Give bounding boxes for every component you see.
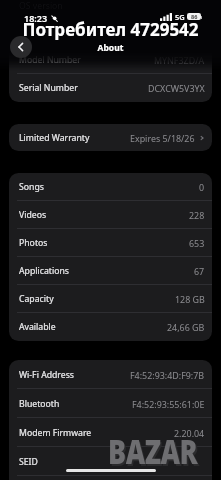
staticText: 2.20.04 bbox=[174, 427, 205, 439]
staticText: 128 GB bbox=[175, 293, 205, 305]
staticText: F4:52:93:4D:F9:7B bbox=[130, 369, 205, 381]
staticText: 18:23 bbox=[24, 12, 48, 24]
staticText: Videos bbox=[19, 209, 47, 221]
staticText: DCXCW5V3YX bbox=[148, 82, 205, 94]
staticText: 0 bbox=[199, 181, 205, 193]
button[interactable]: Model Number bbox=[9, 46, 212, 74]
staticText: Bluetooth bbox=[19, 398, 60, 410]
staticText: 24,66 GB bbox=[167, 321, 205, 333]
staticText: Photos bbox=[19, 237, 48, 249]
button[interactable]: Limited Warranty bbox=[9, 124, 212, 151]
button[interactable]: Capacity bbox=[9, 285, 212, 313]
button[interactable]: Wi-Fi Address bbox=[9, 360, 212, 389]
button[interactable]: Available bbox=[9, 313, 212, 341]
staticText: MYNF3ZD/A bbox=[154, 54, 205, 66]
staticText: Songs bbox=[19, 181, 44, 193]
staticText: 5G bbox=[175, 12, 185, 22]
button[interactable]: Back bbox=[10, 36, 32, 58]
staticText: Modem Firmware bbox=[19, 427, 92, 439]
staticText: Потребител 4729542 bbox=[0, 18, 221, 41]
staticText: Capacity bbox=[19, 293, 54, 305]
staticText: BAZAR bbox=[108, 428, 198, 474]
button[interactable]: Photos bbox=[9, 229, 212, 257]
button[interactable]: Serial Number bbox=[9, 74, 212, 102]
button[interactable]: Modem Firmware bbox=[9, 418, 212, 447]
staticText: Limited Warranty bbox=[19, 132, 90, 144]
staticText: About bbox=[0, 42, 221, 54]
staticText: SEID bbox=[19, 456, 38, 468]
staticText: 228 bbox=[189, 209, 205, 221]
staticText: 653 bbox=[189, 237, 205, 249]
staticText: Expires 5/18/26 bbox=[130, 132, 195, 144]
staticText: Wi-Fi Address bbox=[19, 369, 75, 381]
staticText: 67 bbox=[194, 265, 205, 277]
staticText: F4:52:93:55:61:0E bbox=[132, 398, 205, 410]
staticText: 86 bbox=[191, 13, 198, 20]
button[interactable]: Videos bbox=[9, 201, 212, 229]
staticText: Applications bbox=[19, 265, 69, 277]
button[interactable]: Songs bbox=[9, 173, 212, 201]
staticText: BAZAR bbox=[110, 430, 200, 476]
button[interactable]: Applications bbox=[9, 257, 212, 285]
button[interactable]: SEID bbox=[9, 447, 212, 476]
staticText: Serial Number bbox=[19, 82, 78, 94]
staticText: Available bbox=[19, 321, 56, 333]
button[interactable]: Bluetooth bbox=[9, 389, 212, 418]
staticText: Model Number bbox=[19, 54, 81, 66]
